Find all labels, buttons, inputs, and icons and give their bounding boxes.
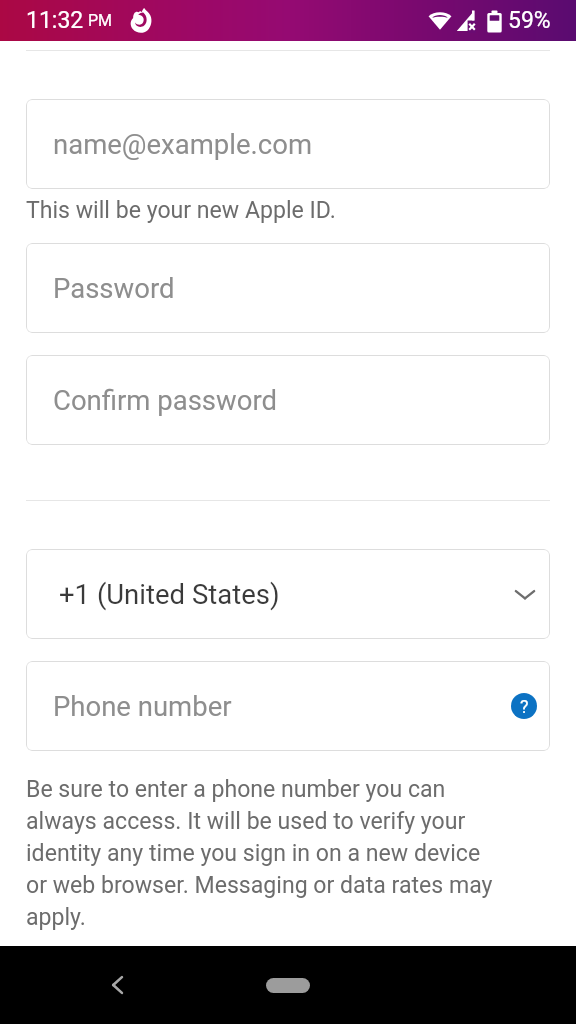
button[interactable]: +1 (United States) — [26, 549, 550, 639]
staticText: Be sure to enter a phone number you can … — [26, 776, 504, 931]
button[interactable]: Help — [511, 693, 537, 719]
staticText: 11:32 — [26, 7, 84, 34]
staticText: Phone number — [53, 690, 232, 722]
button[interactable]: Confirm password — [26, 355, 550, 445]
other: Select country — [513, 582, 537, 606]
button[interactable]: Home — [252, 964, 324, 1006]
staticText: This will be your new Apple ID. — [26, 197, 336, 224]
staticText: ? — [520, 696, 529, 717]
staticText: +1 (United States) — [59, 578, 280, 610]
button[interactable]: Phone number — [26, 661, 550, 751]
staticText: 59% — [508, 7, 551, 34]
staticText: PM — [88, 11, 113, 30]
staticText: name@example.com — [53, 128, 312, 160]
button[interactable]: name@example.com — [26, 99, 550, 189]
button[interactable]: Password — [26, 243, 550, 333]
button[interactable]: Back — [94, 961, 142, 1009]
staticText: Confirm password — [53, 384, 277, 416]
staticText: Password — [53, 272, 175, 304]
